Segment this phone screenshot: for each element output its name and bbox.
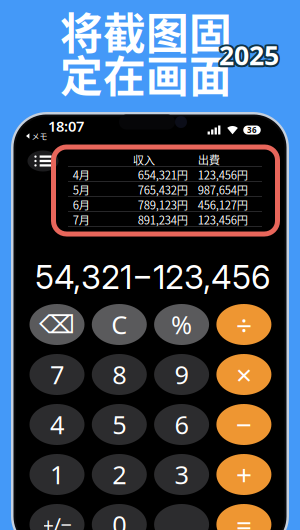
button[interactable]: ÷: [216, 304, 271, 345]
staticText: 2: [112, 458, 126, 491]
staticText: ÷: [236, 306, 252, 343]
staticText: 789,123円: [138, 196, 188, 213]
staticText: −: [236, 406, 252, 443]
staticText: =: [236, 506, 252, 530]
staticText: 5: [112, 408, 126, 441]
staticText: 2025: [219, 35, 279, 71]
staticText: 8: [112, 358, 126, 391]
staticText: 18:07: [48, 116, 84, 136]
staticText: 6: [175, 408, 189, 441]
staticText: 7: [50, 358, 64, 391]
staticText: 2025: [221, 37, 281, 73]
staticText: 将截图固: [60, 0, 232, 62]
button[interactable]: C: [92, 304, 147, 345]
staticText: 5月: [73, 181, 90, 198]
button[interactable]: 6: [154, 404, 209, 445]
staticText: 0: [112, 508, 126, 530]
staticText: 123,456円: [198, 166, 248, 183]
staticText: 3: [175, 458, 189, 491]
staticText: 定在画面: [60, 43, 232, 105]
staticText: 2025: [217, 37, 277, 73]
staticText: 54,321−123,456: [35, 257, 271, 297]
button[interactable]: 0: [92, 504, 147, 530]
staticText: 2025: [221, 36, 281, 71]
staticText: 7月: [73, 211, 90, 228]
staticText: メモ: [31, 130, 47, 142]
button[interactable]: −: [216, 404, 271, 445]
staticText: 2025: [217, 36, 277, 71]
button[interactable]: 2: [92, 454, 147, 495]
button[interactable]: 1: [29, 454, 84, 495]
staticText: 2025: [217, 39, 277, 74]
staticText: 出費: [198, 151, 220, 168]
button[interactable]: .: [154, 504, 209, 530]
staticText: 1: [50, 458, 64, 491]
button[interactable]: 3: [154, 454, 209, 495]
staticText: 4月: [73, 166, 90, 183]
button[interactable]: 5: [92, 404, 147, 445]
staticText: 9: [175, 358, 189, 391]
button[interactable]: +/−: [29, 504, 84, 530]
staticText: ⌫: [39, 310, 75, 339]
staticText: 6月: [73, 196, 90, 213]
button[interactable]: %: [154, 304, 209, 345]
button[interactable]: Menu: [27, 150, 58, 171]
staticText: 2025: [219, 37, 279, 73]
button[interactable]: 4: [29, 404, 84, 445]
staticText: 収入: [133, 151, 155, 168]
button[interactable]: 7: [29, 354, 84, 395]
button[interactable]: ×: [216, 354, 271, 395]
staticText: 2025: [219, 39, 279, 74]
staticText: +: [236, 456, 252, 493]
button[interactable]: 8: [92, 354, 147, 395]
staticText: ×: [236, 356, 252, 393]
staticText: C: [111, 308, 127, 341]
staticText: 891,234円: [138, 211, 188, 228]
staticText: 456,127円: [198, 196, 248, 213]
button[interactable]: ⌫: [29, 304, 84, 345]
staticText: 123,456円: [198, 211, 248, 228]
staticText: 765,432円: [138, 181, 188, 198]
staticText: 2025: [221, 39, 281, 74]
button[interactable]: 9: [154, 354, 209, 395]
staticText: 654,321円: [138, 166, 188, 183]
button[interactable]: +: [216, 454, 271, 495]
staticText: %: [171, 308, 192, 341]
button[interactable]: =: [216, 504, 271, 530]
staticText: +/−: [42, 511, 71, 530]
staticText: 4: [50, 408, 64, 441]
staticText: 36: [247, 125, 257, 135]
staticText: 987,654円: [198, 181, 248, 198]
